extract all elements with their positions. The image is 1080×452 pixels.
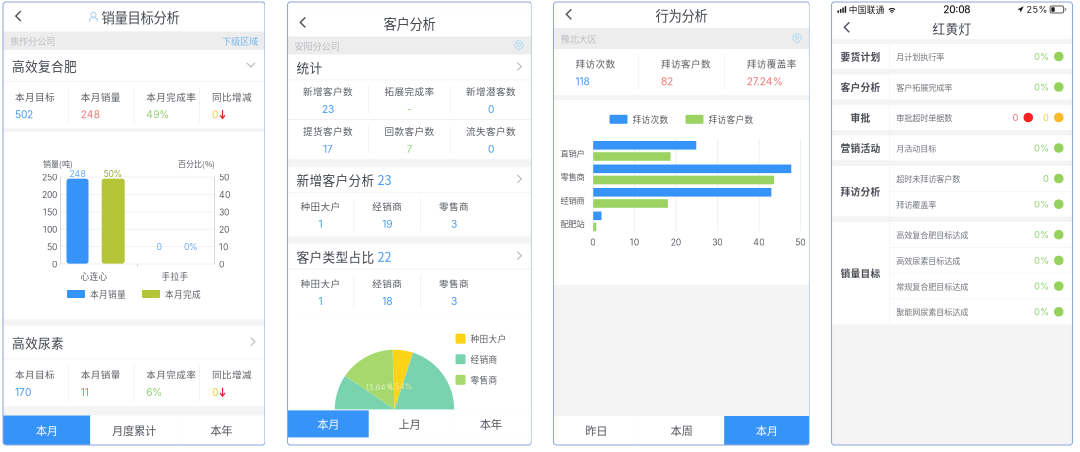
staticText: 直销户 <box>560 147 584 159</box>
staticText: 高效复合肥目标达成 <box>896 229 968 241</box>
staticText: 月度累计 <box>112 422 156 438</box>
button[interactable]: Back <box>831 17 863 39</box>
button[interactable]: Location <box>791 33 802 44</box>
staticText: 销量(吨) <box>43 158 73 169</box>
staticText: 0 <box>156 242 161 252</box>
staticText: 新增潜客数 <box>466 84 516 98</box>
staticText: 要货计划 <box>840 49 880 64</box>
staticText: 新增客户数 <box>303 84 353 98</box>
button[interactable]: 本周 <box>639 416 724 445</box>
staticText: 100 <box>43 224 57 235</box>
staticText: 回款客户数 <box>384 124 434 138</box>
staticText: 25% <box>1027 4 1048 15</box>
staticText: 拜访次数 <box>632 113 668 125</box>
button[interactable]: 拜访覆盖率 <box>890 192 1072 217</box>
staticText: 0% <box>1034 142 1049 154</box>
button[interactable]: Location <box>513 40 524 51</box>
staticText: 0% <box>1034 306 1049 317</box>
staticText: 40 <box>753 237 764 247</box>
button[interactable]: 昨日 <box>553 416 639 445</box>
staticText: 118 <box>575 75 589 88</box>
staticText: 审批超时单据数 <box>896 112 952 123</box>
button[interactable]: 超时未拜访客户数 <box>890 166 1072 191</box>
button[interactable]: 月活动目标 <box>890 135 1072 160</box>
staticText: 月计划执行率 <box>896 51 944 62</box>
staticText: 0 <box>488 103 494 115</box>
staticText: 本月销量 <box>81 90 121 103</box>
button[interactable]: 月度累计 <box>90 415 178 445</box>
staticText: 零售商 <box>560 170 584 182</box>
button[interactable]: 高效复合肥目标达成 <box>890 222 1072 247</box>
button[interactable]: Back <box>287 10 319 37</box>
button[interactable]: 本年 <box>450 410 531 437</box>
staticText: 流失客户数 <box>466 124 516 138</box>
staticText: 昨日 <box>585 422 607 439</box>
staticText: 拜访分析 <box>840 184 880 198</box>
button[interactable]: 高效尿素 <box>3 326 265 359</box>
staticText: 拜访客户数 <box>661 56 711 70</box>
button[interactable]: 高效尿素目标达成 <box>890 248 1072 273</box>
button[interactable]: 本月 <box>724 416 809 445</box>
staticText: 营销活动 <box>840 141 880 155</box>
button[interactable]: 月计划执行率 <box>890 44 1072 69</box>
staticText: 50% <box>103 169 122 179</box>
staticText: 经销商 <box>372 199 402 213</box>
staticText: 6% <box>146 386 162 398</box>
staticText: 0 <box>219 259 224 270</box>
staticText: 销量目标分析 <box>101 7 179 26</box>
staticText: 0 <box>212 108 218 121</box>
staticText: 本年 <box>210 422 232 438</box>
staticText: 0% <box>1034 229 1049 240</box>
staticText: 19 <box>382 218 392 230</box>
staticText: 82 <box>661 75 673 88</box>
staticText: 0 <box>1043 173 1049 184</box>
button[interactable]: 客户类型占比 <box>287 244 531 269</box>
staticText: 250 <box>42 172 57 183</box>
button[interactable]: 常规复合肥目标达成 <box>890 274 1072 299</box>
staticText: 1 <box>318 295 322 307</box>
staticText: 红黄灯 <box>932 19 971 37</box>
staticText: 常规复合肥目标达成 <box>896 280 968 292</box>
staticText: 本月 <box>36 422 58 438</box>
staticText: 本月目标 <box>15 367 55 381</box>
staticText: 0 <box>1043 112 1049 123</box>
staticText: 拜访覆盖率 <box>747 56 797 70</box>
button[interactable]: 本月 <box>287 410 369 437</box>
staticText: 0 <box>212 386 218 398</box>
staticText: 同比增减 <box>212 90 252 103</box>
button[interactable]: 新增客户分析 <box>287 167 531 192</box>
staticText: 中国联通 <box>849 3 885 16</box>
button[interactable]: 本月 <box>3 415 90 445</box>
staticText: 零售商 <box>470 373 497 386</box>
staticText: 17 <box>323 143 333 155</box>
button[interactable]: Back <box>553 2 585 28</box>
staticText: 客户分析 <box>840 80 880 94</box>
button[interactable]: 统计 <box>287 55 531 80</box>
staticText: 23 <box>377 170 391 189</box>
staticText: 10 <box>630 237 639 247</box>
button[interactable]: 本年 <box>178 415 265 445</box>
button[interactable]: Back <box>3 2 35 31</box>
staticText: 248 <box>69 169 85 179</box>
staticText: 0 <box>1012 112 1018 123</box>
staticText: 30 <box>219 207 229 217</box>
staticText: 本月完成率 <box>146 367 196 381</box>
staticText: 聚能网尿素目标达成 <box>896 306 968 318</box>
staticText: 本年 <box>480 416 502 432</box>
button[interactable]: 审批超时单据数 <box>890 105 1072 130</box>
button[interactable]: 高效复合肥 <box>3 50 265 81</box>
button[interactable]: 聚能网尿素目标达成 <box>890 299 1072 324</box>
button[interactable]: 上月 <box>369 410 450 437</box>
staticText: 30 <box>712 237 722 247</box>
staticText: 本月完成 <box>165 288 201 300</box>
staticText: 本月完成率 <box>146 90 196 103</box>
staticText: 豫北大区 <box>560 32 596 45</box>
staticText: 零售商 <box>439 199 469 213</box>
button[interactable]: 下级区域 <box>222 31 258 50</box>
staticText: 本月 <box>317 416 339 432</box>
staticText: 1 <box>318 218 322 230</box>
button[interactable]: 客户拓展完成率 <box>890 74 1072 99</box>
staticText: 0% <box>184 242 198 252</box>
staticText: 248 <box>81 108 100 121</box>
staticText: 客户类型占比 <box>296 247 374 265</box>
